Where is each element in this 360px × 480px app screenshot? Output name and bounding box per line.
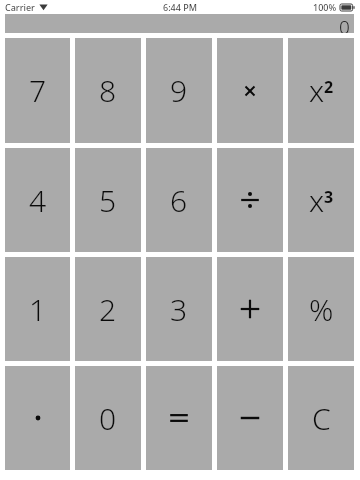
button[interactable]: 2 [75,257,141,361]
staticText: C [312,398,331,439]
button[interactable]: 0 [5,14,354,33]
button[interactable]: 7 [5,38,70,143]
staticText: 6 [170,180,188,221]
button[interactable]: Divide [217,148,283,252]
button[interactable]: Clear [288,366,354,470]
button[interactable]: 4 [5,148,70,252]
button[interactable]: Percent [288,257,354,361]
staticText: x2 [309,70,334,111]
button[interactable]: 0 [75,366,141,470]
button[interactable]: 5 [75,148,141,252]
staticText: 8 [99,70,117,111]
staticText: 4 [29,180,47,221]
button[interactable]: 9 [146,38,212,143]
staticText: x3 [309,180,334,221]
button[interactable]: Minus [217,366,283,470]
button[interactable]: Equals [146,366,212,470]
button[interactable]: X cubed [288,148,354,252]
staticText: 9 [170,70,188,111]
button[interactable]: 6 [146,148,212,252]
button[interactable]: Plus [217,257,283,361]
button[interactable]: X squared [288,38,354,143]
staticText: 0 [339,14,350,33]
staticText: 0 [99,398,117,439]
button[interactable]: Decimal point [5,366,70,470]
staticText: 2 [99,289,117,330]
staticText: 6:44 PM [163,1,197,13]
staticText: 1 [29,289,47,330]
button[interactable]: 8 [75,38,141,143]
staticText: 3 [170,289,188,330]
staticText: Carrier [5,1,35,13]
button[interactable]: 1 [5,257,70,361]
staticText: 7 [29,70,47,111]
staticText: % [309,289,334,330]
staticText: 100% [313,1,337,13]
staticText: 5 [99,180,117,221]
button[interactable]: Multiply [217,38,283,143]
button[interactable]: 3 [146,257,212,361]
